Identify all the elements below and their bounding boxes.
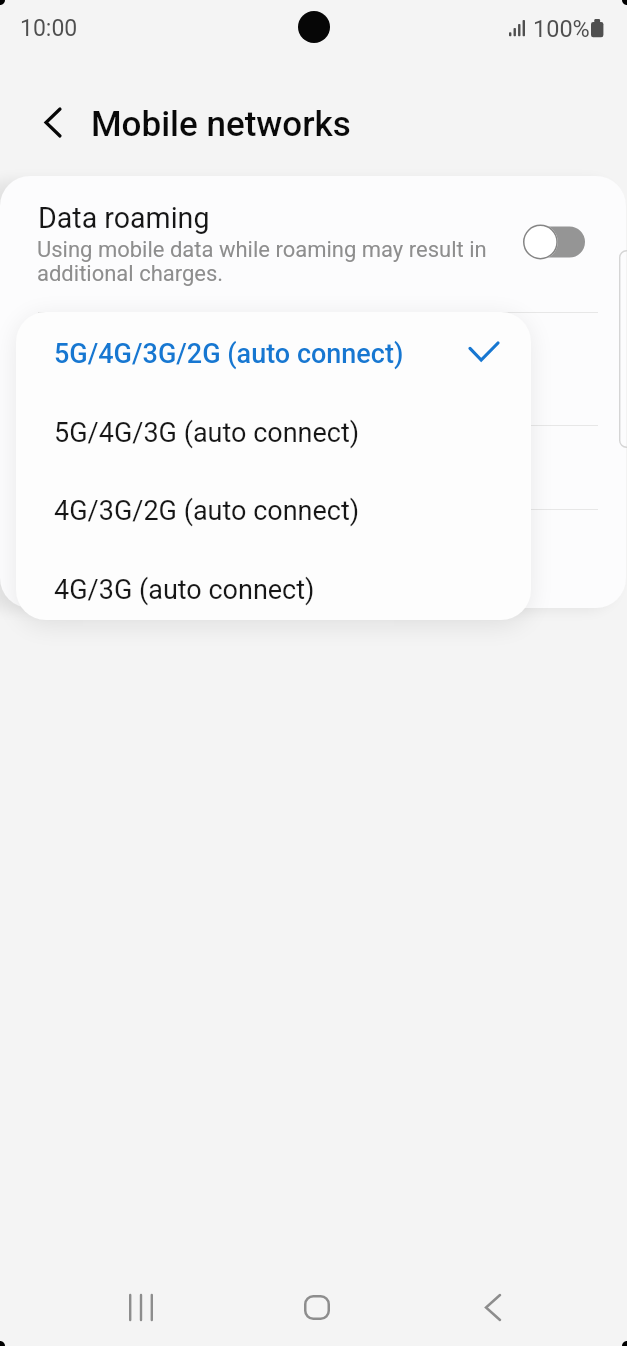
button[interactable]: Back bbox=[436, 1266, 549, 1346]
button[interactable]: Data roaming bbox=[0, 176, 626, 312]
button[interactable]: 5G/4G/3G/2G (auto connect) bbox=[16, 312, 531, 389]
button[interactable]: Navigate up bbox=[30, 99, 76, 145]
button[interactable]: 4G/3G (auto connect) bbox=[16, 548, 531, 620]
staticText: 5G/4G/3G (auto connect) bbox=[54, 417, 360, 449]
button[interactable]: Data roaming switch, off bbox=[522, 224, 585, 260]
staticText: Mobile networks bbox=[91, 104, 351, 145]
button[interactable]: 5G/4G/3G (auto connect) bbox=[16, 391, 531, 468]
staticText: 4G/3G (auto connect) bbox=[54, 574, 315, 606]
staticText: 100% bbox=[533, 15, 590, 43]
staticText: 4G/3G/2G (auto connect) bbox=[54, 495, 360, 527]
staticText: Data roaming bbox=[38, 201, 210, 235]
staticText: 5G/4G/3G/2G (auto connect) bbox=[54, 338, 404, 370]
staticText: 10:00 bbox=[20, 15, 78, 42]
button[interactable]: 4G/3G/2G (auto connect) bbox=[16, 469, 531, 546]
button[interactable]: Recent apps bbox=[84, 1266, 197, 1346]
staticText: Using mobile data while roaming may resu… bbox=[37, 237, 487, 286]
button[interactable]: Home bbox=[260, 1266, 373, 1346]
